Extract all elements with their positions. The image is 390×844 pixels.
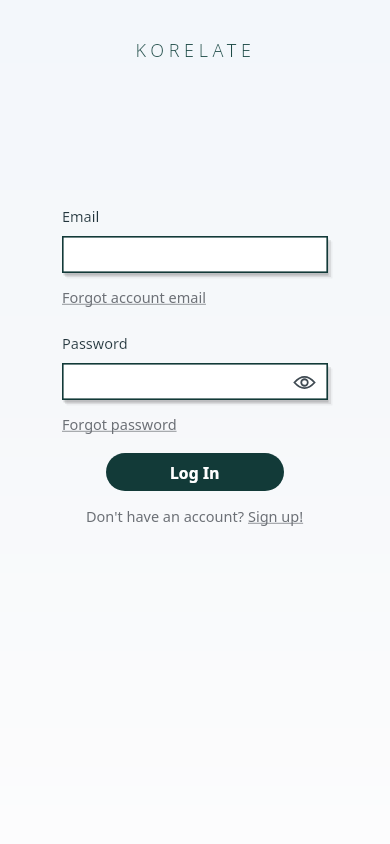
staticText: Sign up! [248, 506, 304, 526]
button[interactable]: Show password [292, 370, 316, 394]
staticText: Email [62, 206, 100, 226]
staticText: KORELATE [135, 38, 256, 63]
staticText: Password [62, 333, 128, 353]
button[interactable]: Forgot password [62, 414, 177, 434]
staticText: Forgot account email [62, 287, 206, 307]
button[interactable]: Sign up! [248, 506, 304, 526]
button[interactable]: Show password [62, 363, 328, 400]
button[interactable]: Log In [106, 453, 284, 491]
staticText: Forgot password [62, 414, 177, 434]
button[interactable]: Forgot account email [62, 287, 206, 307]
staticText: Log In [170, 462, 220, 483]
button[interactable] [62, 236, 328, 273]
staticText: Don't have an account? [86, 506, 248, 526]
